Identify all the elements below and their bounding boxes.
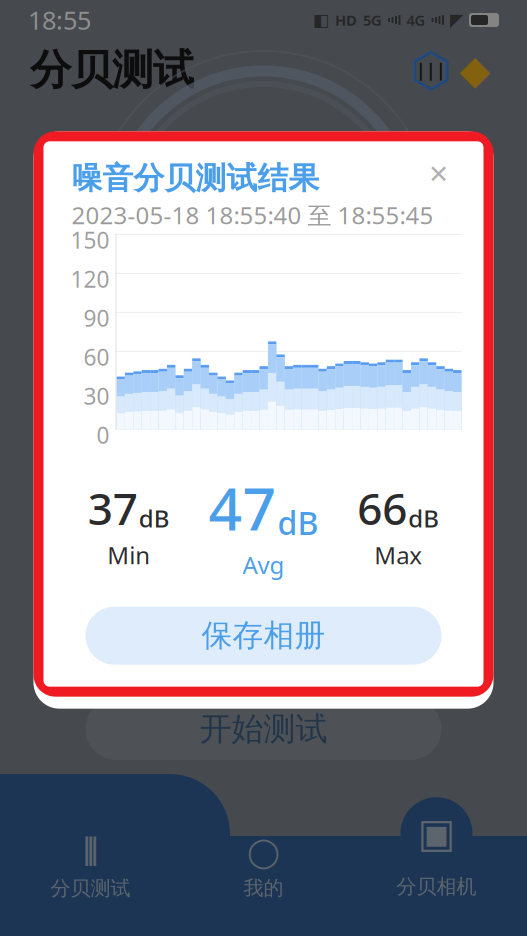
- staticText: ◆: [459, 47, 490, 93]
- staticText: ◧: [313, 10, 329, 30]
- staticText: 保存相册: [201, 617, 325, 654]
- staticText: 37: [88, 479, 138, 537]
- button[interactable]: 会员: [453, 48, 497, 92]
- staticText: 0: [96, 420, 109, 450]
- staticText: 66: [357, 479, 407, 537]
- staticText: Max: [374, 539, 422, 571]
- staticText: dB: [277, 501, 318, 544]
- staticText: ⦀: [83, 835, 98, 869]
- staticText: |||: [416, 58, 446, 81]
- staticText: 5G: [363, 10, 382, 30]
- staticText: 分贝测试: [50, 876, 130, 901]
- button[interactable]: ◯: [177, 830, 350, 906]
- staticText: 分贝测试: [30, 45, 194, 95]
- staticText: 60: [83, 342, 109, 372]
- staticText: Avg: [242, 549, 284, 581]
- staticText: ◯: [247, 836, 280, 869]
- staticText: 18:55: [28, 3, 91, 37]
- staticText: 我的: [243, 876, 283, 900]
- staticText: ▣: [417, 810, 455, 856]
- staticText: ✕: [428, 160, 449, 189]
- staticText: 150: [70, 225, 109, 255]
- button[interactable]: ▣: [350, 817, 523, 919]
- staticText: HD: [335, 10, 357, 30]
- button[interactable]: 声音检测: [409, 48, 453, 92]
- staticText: 开始测试: [199, 709, 327, 749]
- staticText: 分贝相机: [396, 874, 476, 899]
- button[interactable]: 关闭: [421, 159, 455, 189]
- staticText: 120: [70, 264, 109, 294]
- staticText: 2023-05-18 18:55:40 至 18:55:45: [71, 199, 433, 231]
- staticText: 噪音分贝测试结果: [71, 159, 319, 197]
- staticText: ◤: [450, 10, 463, 30]
- staticText: dB: [408, 502, 439, 534]
- button[interactable]: 保存相册: [85, 607, 441, 665]
- staticText: 47: [208, 469, 276, 547]
- button[interactable]: 开始测试: [85, 698, 441, 760]
- staticText: 4G: [406, 10, 425, 30]
- staticText: 90: [83, 303, 109, 333]
- button[interactable]: ⦀: [4, 829, 177, 907]
- staticText: ⬡: [410, 43, 452, 97]
- staticText: 30: [83, 381, 109, 411]
- staticText: Min: [107, 539, 150, 571]
- staticText: dB: [139, 502, 170, 534]
